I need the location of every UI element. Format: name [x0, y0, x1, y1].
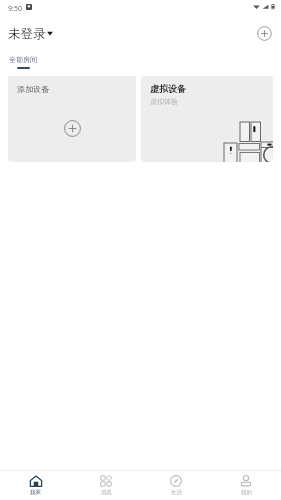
staticText: 虚拟体验: [150, 97, 178, 106]
staticText: 消息: [101, 489, 112, 496]
staticText: 全部房间: [9, 55, 37, 64]
button[interactable]: 消息: [71, 471, 141, 500]
staticText: 生活: [171, 489, 182, 496]
staticText: 未登录: [8, 26, 46, 42]
button[interactable]: 生活: [141, 471, 211, 500]
staticText: 9:50: [8, 4, 22, 14]
button[interactable]: 添加设备: [8, 76, 136, 162]
button[interactable]: 我家: [0, 471, 71, 500]
button[interactable]: Add device: [257, 26, 272, 41]
button[interactable]: 未登录: [8, 26, 53, 42]
button[interactable]: 虚拟设备: [141, 76, 273, 162]
staticText: 我家: [30, 489, 41, 496]
button[interactable]: 我的: [211, 471, 281, 500]
staticText: 我的: [241, 489, 252, 496]
button[interactable]: 全部房间: [9, 55, 37, 69]
staticText: 虚拟设备: [150, 83, 186, 94]
staticText: 添加设备: [17, 84, 49, 94]
